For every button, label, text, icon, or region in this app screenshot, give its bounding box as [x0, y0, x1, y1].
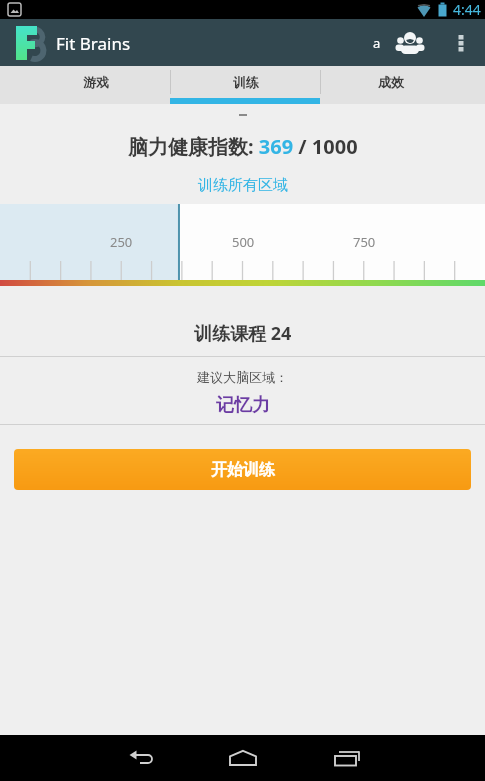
staticText: 训练所有区域 [198, 176, 288, 195]
staticText: 训练课程 24 [194, 321, 292, 346]
button[interactable]: 游戏 [0, 66, 170, 98]
staticText: 成效 [378, 74, 404, 90]
button[interactable]: 开始训练 [14, 449, 471, 490]
staticText: 脑力健康指数: 369 / 1000 [128, 133, 358, 160]
button[interactable]: 训练 [171, 66, 320, 98]
button[interactable] [325, 736, 369, 780]
button[interactable]: 训练所有区域 [0, 166, 485, 204]
staticText: 500 [232, 233, 255, 251]
staticText: 250 [110, 233, 133, 251]
staticText: 训练 [233, 74, 259, 90]
staticText: 4:44 [453, 0, 481, 19]
button[interactable] [393, 26, 427, 60]
button[interactable] [449, 31, 473, 55]
staticText: a [373, 34, 381, 52]
staticText: Fit Brains [56, 32, 131, 55]
button[interactable] [121, 736, 165, 780]
staticText: 建议大脑区域： [197, 369, 288, 385]
staticText: 750 [353, 233, 376, 251]
staticText: 游戏 [83, 74, 109, 90]
staticText: 开始训练 [211, 460, 275, 480]
button[interactable] [221, 736, 265, 780]
button[interactable]: 成效 [321, 66, 485, 98]
staticText: 记忆力 [216, 394, 270, 417]
